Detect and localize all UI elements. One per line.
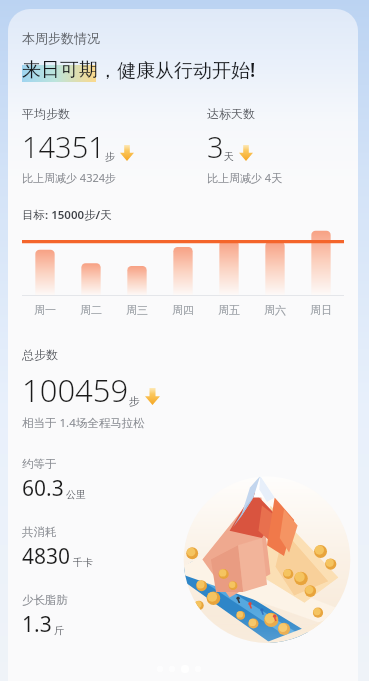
staticText: 比上周减少 4324步 xyxy=(22,170,117,185)
staticText: 少长脂肪 xyxy=(22,593,68,607)
staticText: 共消耗 xyxy=(22,525,57,539)
staticText: 周三 xyxy=(126,303,148,317)
staticText: 比上周减少 4天 xyxy=(207,170,283,185)
staticText: 周一 xyxy=(34,303,56,317)
staticText: 约等于 xyxy=(22,457,57,471)
staticText: 60.3 xyxy=(22,474,64,503)
staticText: 步 xyxy=(129,394,140,408)
staticText: 步 xyxy=(105,150,115,163)
staticText: 周六 xyxy=(264,303,286,317)
staticText: 周日 xyxy=(310,303,332,317)
staticText: 100459 xyxy=(22,369,129,411)
staticText: 平均步数 xyxy=(22,106,70,121)
staticText: 总步数 xyxy=(22,347,58,362)
staticText: 1.3 xyxy=(22,610,52,639)
staticText: 斤 xyxy=(54,624,64,637)
staticText: 3 xyxy=(207,127,224,166)
staticText: 14351 xyxy=(22,127,105,166)
staticText: 本周步数情况 xyxy=(22,30,100,46)
staticText: 公里 xyxy=(66,488,86,501)
staticText: ，健康从行动开始! xyxy=(98,57,256,83)
staticText: 4830 xyxy=(22,542,71,571)
staticText: 周五 xyxy=(218,303,240,317)
staticText: 千卡 xyxy=(73,556,93,569)
staticText: 达标天数 xyxy=(207,106,255,121)
staticText: 来日可期 xyxy=(22,58,98,82)
staticText: 相当于 1.4场全程马拉松 xyxy=(22,415,145,431)
staticText: 周四 xyxy=(172,303,194,317)
staticText: 天 xyxy=(224,150,234,163)
staticText: 目标: 15000步/天 xyxy=(22,207,112,223)
staticText: 周二 xyxy=(80,303,102,317)
